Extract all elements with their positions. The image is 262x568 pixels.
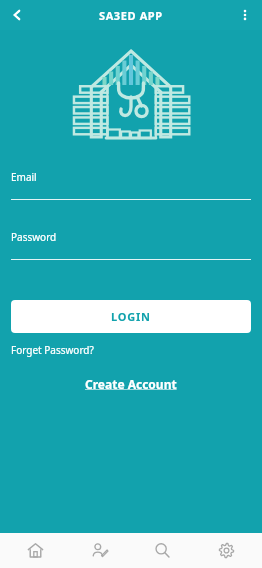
staticText: Email <box>11 170 37 184</box>
staticText: Password <box>11 230 57 244</box>
button[interactable]: Home <box>8 533 63 568</box>
staticText: Forget Password? <box>11 343 94 357</box>
button[interactable]: Password <box>11 230 251 260</box>
staticText: LOGIN <box>111 309 151 324</box>
button[interactable]: Create Account <box>75 373 187 395</box>
button[interactable]: Forget Password? <box>11 341 262 359</box>
staticText: SA3ED APP <box>99 8 163 23</box>
staticText: Create Account <box>85 376 177 392</box>
button[interactable]: Profile <box>72 533 127 568</box>
button[interactable]: LOGIN <box>11 300 251 333</box>
button[interactable]: Search <box>135 533 190 568</box>
button[interactable]: Email <box>11 170 251 200</box>
button[interactable]: Settings <box>199 533 254 568</box>
button[interactable]: Back <box>4 2 30 28</box>
button[interactable]: More options <box>233 3 257 27</box>
